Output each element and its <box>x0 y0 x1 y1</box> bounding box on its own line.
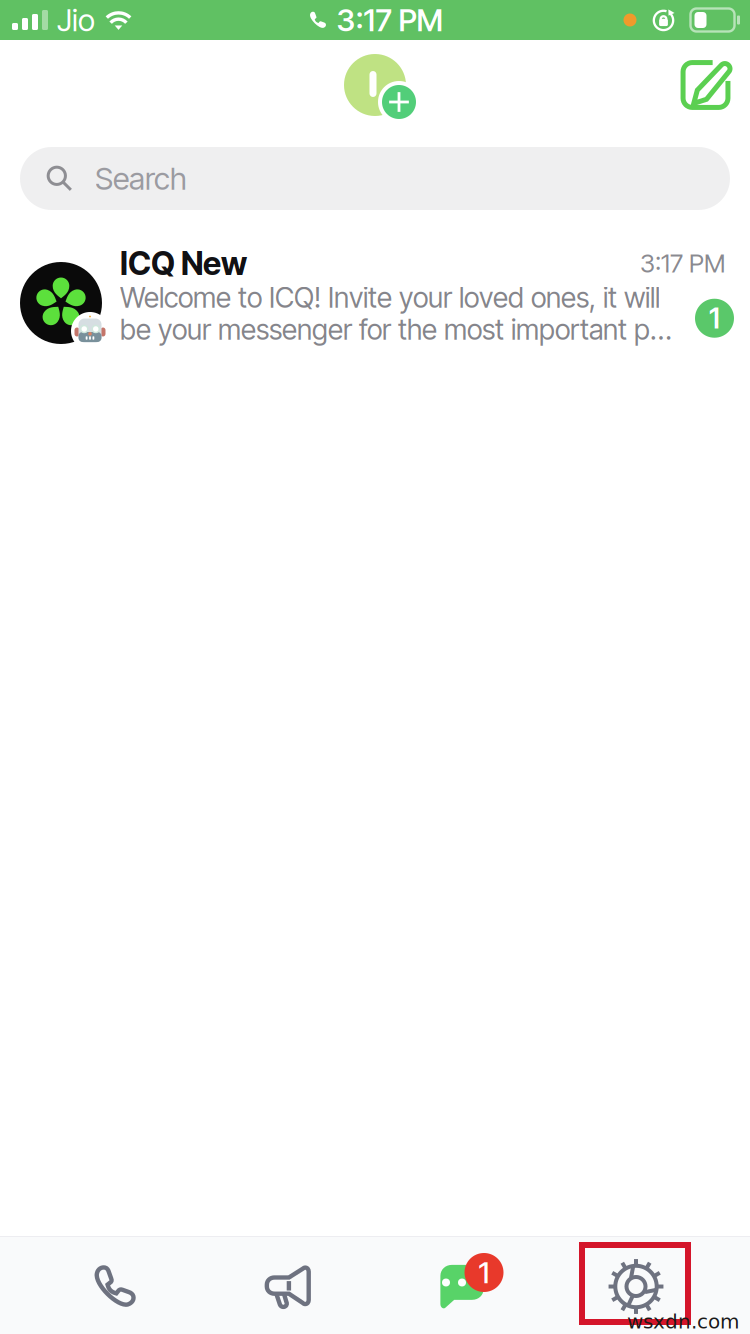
button[interactable]: Channels <box>201 1239 375 1334</box>
staticText: ICQ New <box>120 244 247 283</box>
staticText: 3:17 PM <box>640 248 725 279</box>
button[interactable]: New message <box>664 43 747 126</box>
staticText: Search <box>95 160 187 197</box>
button[interactable]: Profile <box>329 43 421 127</box>
button[interactable]: ICQ New <box>0 234 750 346</box>
staticText: 1 <box>709 301 720 335</box>
staticText: Jio <box>57 1 95 38</box>
button[interactable]: Calls <box>27 1239 201 1334</box>
staticText: 1 <box>478 1255 489 1290</box>
staticText: be your messenger for the most important… <box>120 313 672 346</box>
button[interactable]: Settings <box>549 1239 723 1334</box>
button[interactable]: Chats <box>375 1239 549 1334</box>
button[interactable]: Search <box>20 147 730 210</box>
staticText: wsxdn.com <box>627 1310 739 1333</box>
staticText: 3:17 PM <box>336 1 442 38</box>
staticText: Welcome to ICQ! Invite your loved ones, … <box>120 281 660 315</box>
